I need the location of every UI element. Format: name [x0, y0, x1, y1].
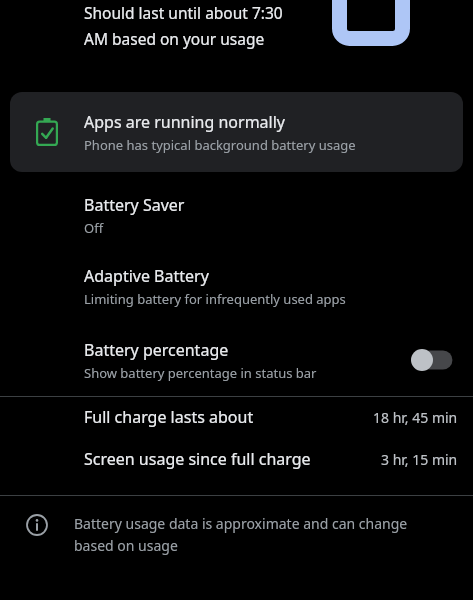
staticText: AM based on your usage [84, 28, 265, 49]
button[interactable]: Battery Saver [0, 194, 473, 237]
staticText: 3 hr, 15 min [381, 450, 458, 469]
button[interactable]: Battery percentage toggle, off [411, 349, 457, 371]
button[interactable]: Full charge lasts about [0, 397, 473, 437]
staticText: Limiting battery for infrequently used a… [84, 290, 346, 308]
staticText: 18 hr, 45 min [373, 408, 458, 427]
button[interactable]: Battery percentage [0, 336, 473, 384]
button[interactable]: Apps are running normally [10, 92, 463, 172]
staticText: Should last until about 7:30 [84, 2, 283, 23]
staticText: based on usage [74, 536, 178, 555]
staticText: Apps are running normally [84, 111, 285, 133]
button[interactable]: Screen usage since full charge [0, 437, 473, 481]
staticText: Full charge lasts about [84, 406, 254, 428]
staticText: Adaptive Battery [84, 265, 209, 287]
staticText: Screen usage since full charge [84, 448, 311, 470]
staticText: Battery Saver [84, 194, 185, 216]
button[interactable]: Adaptive Battery [0, 265, 473, 308]
staticText: Battery usage data is approximate and ca… [74, 514, 408, 533]
staticText: Battery percentage [84, 339, 229, 361]
staticText: Off [84, 219, 104, 237]
staticText: Phone has typical background battery usa… [84, 136, 356, 154]
staticText: Show battery percentage in status bar [84, 364, 317, 382]
